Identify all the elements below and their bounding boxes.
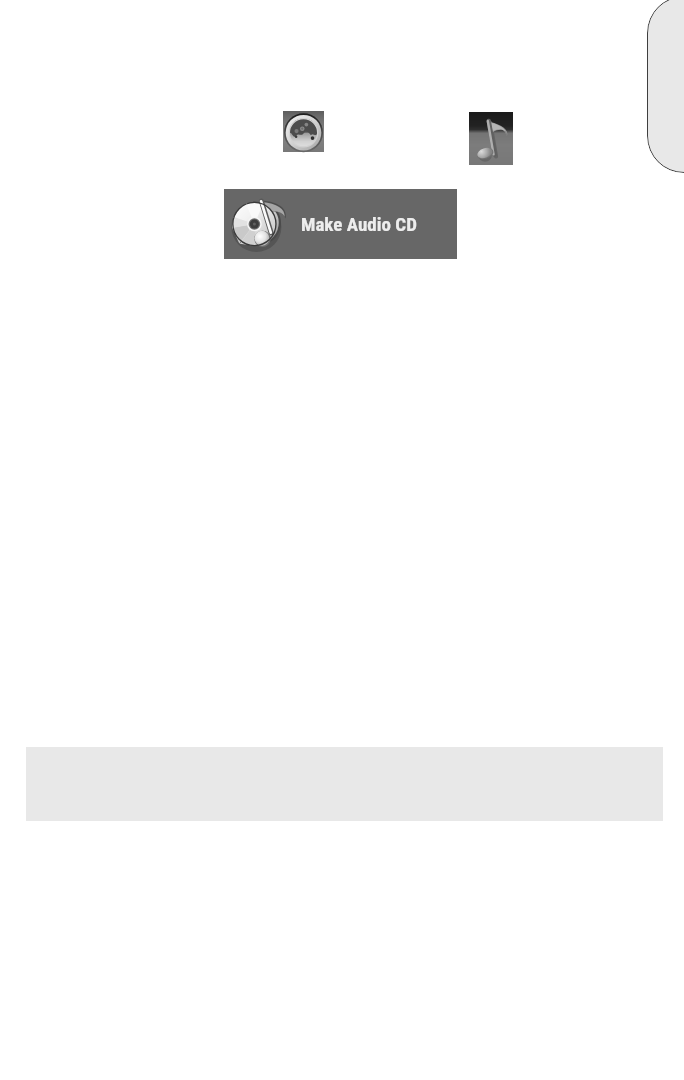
button[interactable]: Music track	[469, 112, 513, 165]
button[interactable]: Make Audio CD	[224, 189, 457, 259]
staticText: Make Audio CD	[301, 213, 417, 235]
button[interactable]: CD drive	[283, 111, 324, 152]
button[interactable]: Side panel	[647, 0, 684, 173]
